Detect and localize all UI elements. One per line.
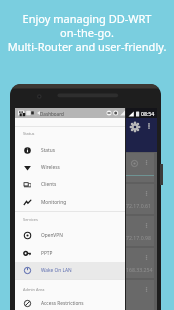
button[interactable]: PPTP xyxy=(15,245,125,262)
button[interactable]: Clients xyxy=(15,176,125,193)
staticText: Clients xyxy=(41,181,57,188)
staticText: PPTP xyxy=(41,250,53,257)
staticText: Admin Area xyxy=(23,287,45,292)
staticText: Access Restrictions xyxy=(41,300,84,307)
button[interactable]: 168.33.254 xyxy=(21,248,154,278)
staticText: Status xyxy=(23,131,35,136)
button[interactable]: Monitoring xyxy=(15,194,125,211)
button[interactable]: OpenVPN xyxy=(15,227,125,244)
staticText: Enjoy managing DD-WRT on-the-go. Multi-R… xyxy=(0,11,174,55)
button[interactable]: Settings xyxy=(130,122,140,132)
button[interactable] xyxy=(21,280,154,310)
staticText: Wireless xyxy=(41,164,60,171)
staticText: Wake On LAN xyxy=(41,267,72,274)
staticText: Services xyxy=(23,217,38,222)
staticText: 72.17.0.98 xyxy=(126,234,151,241)
staticText: 72.17.0.61 xyxy=(126,202,151,209)
button[interactable]: Wake On LAN xyxy=(15,262,125,279)
button[interactable]: 72.17.0.98 xyxy=(21,216,154,246)
button[interactable]: More options xyxy=(146,123,152,129)
button[interactable]: 72.17.0.61 xyxy=(21,184,154,214)
staticText: Dashboard xyxy=(40,111,64,117)
button[interactable]: Wireless xyxy=(15,159,125,176)
button[interactable]: Status xyxy=(15,142,125,159)
staticText: Monitoring xyxy=(41,199,67,206)
staticText: 168.33.254 xyxy=(126,266,153,273)
button[interactable] xyxy=(21,153,154,182)
staticText: OpenVPN xyxy=(41,232,63,239)
staticText: 08:54 xyxy=(141,110,155,117)
button[interactable]: Access Restrictions xyxy=(15,295,125,310)
staticText: Status xyxy=(41,147,56,154)
